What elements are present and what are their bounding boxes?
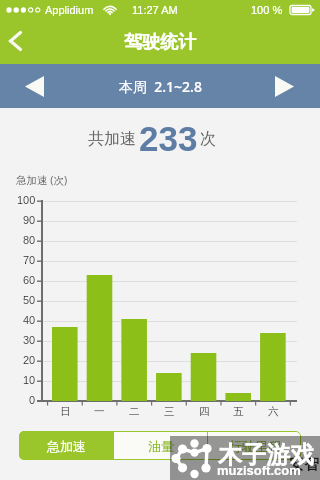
staticText: Applidium xyxy=(45,4,94,16)
staticText: 五 xyxy=(233,405,244,418)
staticText: 急加速 xyxy=(47,438,86,454)
staticText: 40 xyxy=(23,314,36,326)
staticText: 次 xyxy=(200,129,216,149)
staticText: 70 xyxy=(23,254,36,266)
staticText: 行驶里程 xyxy=(229,438,281,454)
button[interactable]: Back xyxy=(2,28,28,54)
staticText: 急加速 (次) xyxy=(16,173,68,187)
staticText: 10 xyxy=(23,374,36,386)
staticText: 驾驶统计 xyxy=(124,31,196,54)
staticText: 80 xyxy=(23,234,36,246)
staticText: 30 xyxy=(23,334,36,346)
staticText: 100 % xyxy=(251,4,283,16)
staticText: 20 xyxy=(23,354,36,366)
staticText: 本周 2.1~2.8 xyxy=(119,77,202,96)
staticText: 0 xyxy=(29,394,36,406)
button[interactable]: Next week xyxy=(271,73,297,99)
button[interactable]: 急加速 xyxy=(19,431,113,460)
staticText: 60 xyxy=(23,274,36,286)
staticText: 共加速 xyxy=(88,129,136,149)
button[interactable]: 油量 xyxy=(114,431,207,460)
staticText: muzisoft.com xyxy=(217,463,301,478)
staticText: 90 xyxy=(23,214,36,226)
staticText: 二 xyxy=(129,405,140,418)
staticText: 三 xyxy=(164,405,175,418)
button[interactable]: Previous week xyxy=(21,73,47,99)
button[interactable]: 行驶里程 xyxy=(208,431,301,460)
staticText: 11:27 AM xyxy=(132,4,178,16)
staticText: 100 xyxy=(17,194,36,206)
staticText: 50 xyxy=(23,294,36,306)
staticText: 安智 xyxy=(289,455,319,474)
staticText: 油量 xyxy=(148,438,174,454)
staticText: 233 xyxy=(139,119,198,153)
staticText: 六 xyxy=(268,405,279,418)
staticText: 四 xyxy=(199,405,210,418)
staticText: 日 xyxy=(60,405,71,418)
staticText: 木子游戏 xyxy=(218,440,314,470)
staticText: 一 xyxy=(94,405,105,418)
